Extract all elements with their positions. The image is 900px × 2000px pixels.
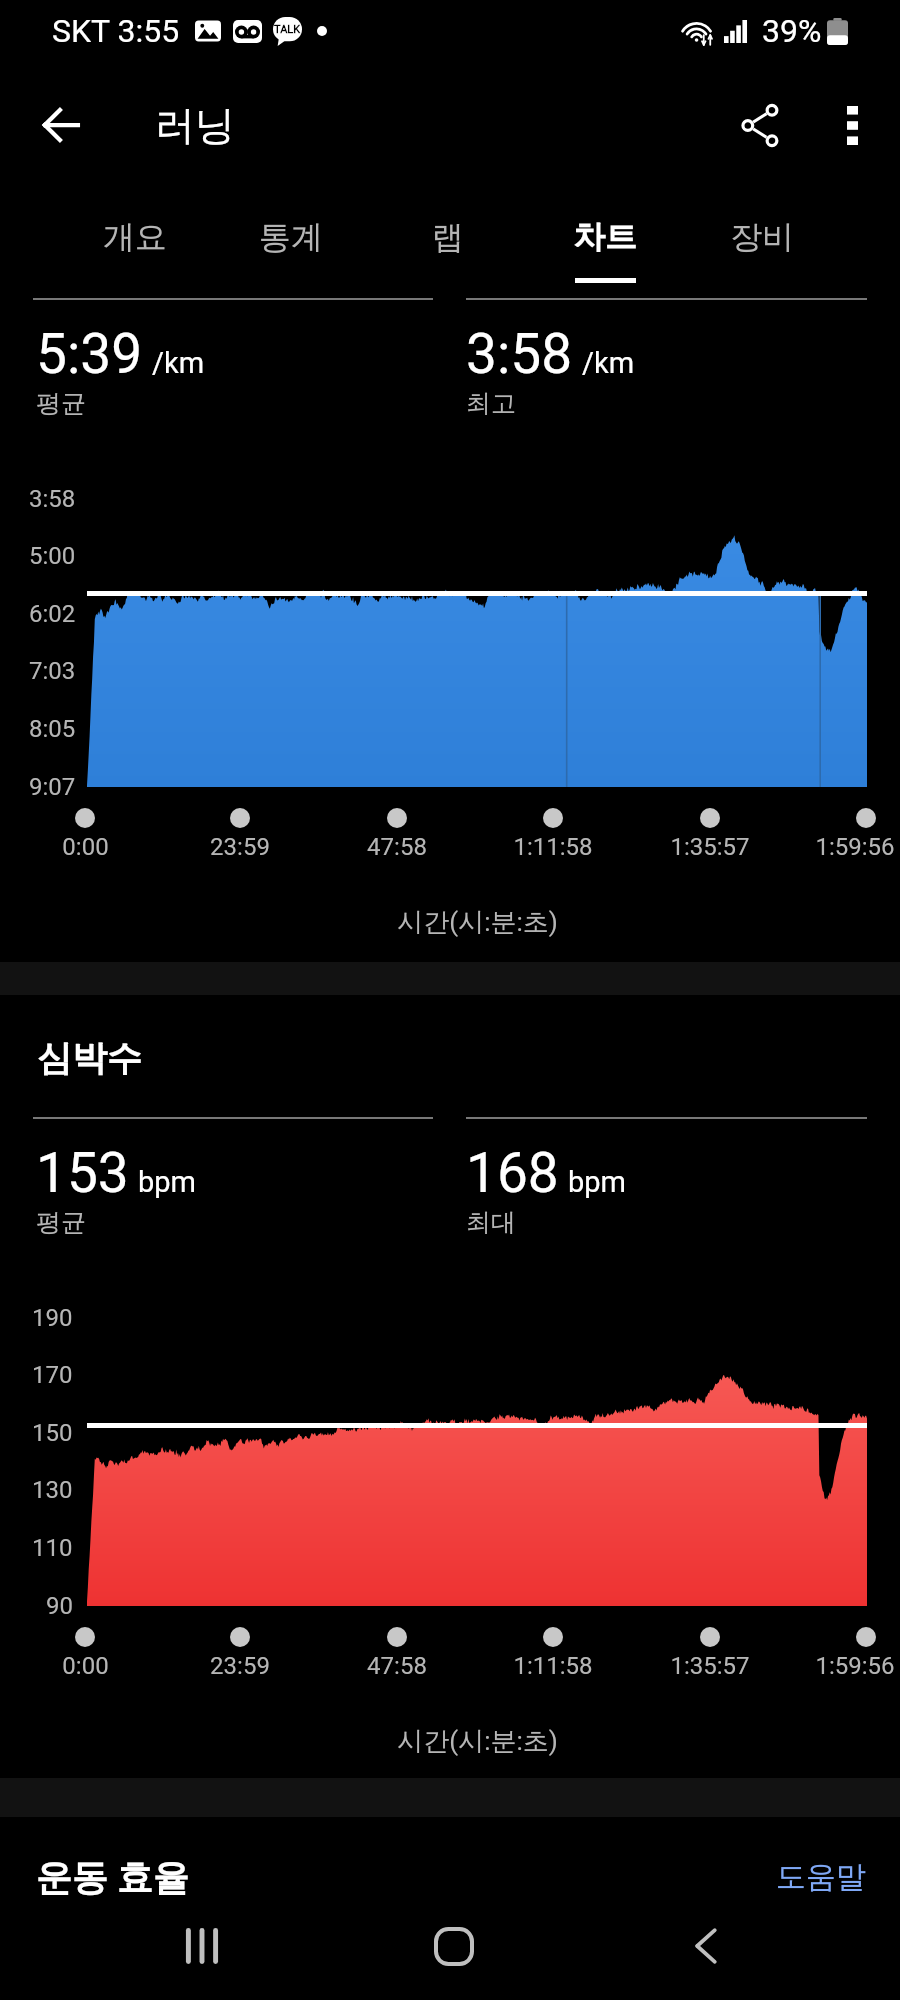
staticText: bpm [568,1165,626,1199]
staticText: 1:59:56 [815,1652,895,1678]
staticText: bpm [138,1165,196,1199]
button[interactable]: 장비 [683,184,840,294]
staticText: 러닝 [155,100,235,150]
staticText: 0:00 [62,833,109,859]
button[interactable]: Back [19,83,103,167]
staticText: 차트 [573,217,637,257]
staticText: 평균 [36,388,86,419]
staticText: 8:05 [29,715,76,743]
staticText: 5:00 [29,542,76,570]
staticText: 최대 [466,1207,516,1238]
staticText: 168 [466,1141,559,1205]
button[interactable]: 운동 효율 [0,1832,900,1922]
staticText: 1:35:57 [670,833,750,859]
button[interactable]: 차트 [526,184,683,294]
button[interactable]: Share [718,66,802,184]
button[interactable]: Recent apps [132,1892,272,2000]
button[interactable]: More options [810,66,894,184]
staticText: 개요 [103,217,167,257]
staticText: 장비 [730,217,794,257]
staticText: 시간(시:분:초) [397,906,558,938]
staticText: 23:59 [210,1652,270,1678]
staticText: 최고 [466,388,516,419]
button[interactable]: 도움말 [742,1848,900,1906]
staticText: 도움말 [776,1858,866,1896]
staticText: 23:59 [210,833,270,859]
staticText: 170 [32,1361,73,1389]
button[interactable]: 랩 [369,184,526,294]
staticText: 153 [36,1141,129,1205]
staticText: 1:11:58 [513,833,593,859]
staticText: 3:58 [29,485,76,513]
staticText: 130 [32,1476,73,1504]
button[interactable]: Back [636,1892,776,2000]
button[interactable]: Home [384,1892,524,2000]
staticText: 랩 [432,217,464,257]
staticText: 110 [32,1534,73,1562]
staticText: 150 [32,1419,73,1447]
staticText: 7:03 [29,657,76,685]
staticText: 심박수 [37,1036,142,1080]
button[interactable]: 통계 [213,184,369,294]
staticText: 90 [46,1592,73,1620]
staticText: 47:58 [367,833,427,859]
staticText: 1:35:57 [670,1652,750,1678]
staticText: /km [582,346,635,380]
staticText: TALK [274,23,301,36]
staticText: 운동 효율 [36,1855,189,1900]
staticText: 47:58 [367,1652,427,1678]
staticText: 1:11:58 [513,1652,593,1678]
staticText: 평균 [36,1207,86,1238]
staticText: /km [152,346,205,380]
staticText: 3:58 [466,322,573,386]
staticText: 0:00 [62,1652,109,1678]
staticText: 5:39 [36,322,143,386]
button[interactable]: 개요 [57,184,213,294]
staticText: SKT 3:55 [52,12,180,50]
staticText: 통계 [259,217,323,257]
staticText: 39% [762,12,822,50]
staticText: 1:59:56 [815,833,895,859]
staticText: 9:07 [29,773,76,801]
staticText: 190 [32,1304,73,1332]
staticText: 6:02 [29,600,76,628]
staticText: 시간(시:분:초) [397,1725,558,1757]
